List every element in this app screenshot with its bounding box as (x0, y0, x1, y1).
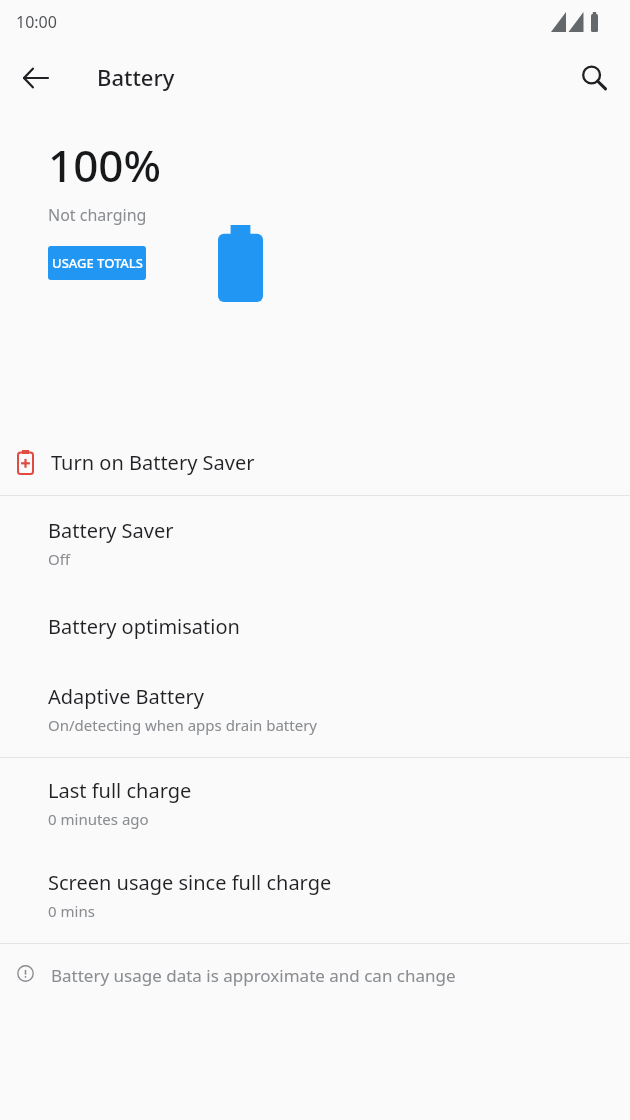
button[interactable]: Back (12, 54, 60, 102)
button[interactable]: Turn on Battery Saver (0, 432, 630, 495)
button[interactable]: Battery Saver (0, 496, 630, 591)
staticText: Screen usage since full charge (48, 869, 332, 896)
staticText: On/detecting when apps drain battery (48, 715, 317, 735)
staticText: USAGE TOTALS (52, 254, 143, 272)
button[interactable]: Last full charge (0, 758, 630, 851)
staticText: Turn on Battery Saver (51, 449, 255, 476)
staticText: 100% (48, 135, 161, 195)
staticText: Battery usage data is approximate and ca… (51, 964, 456, 987)
button[interactable]: Battery optimisation (0, 591, 630, 665)
button[interactable]: USAGE TOTALS (48, 246, 146, 280)
button[interactable]: Search (570, 54, 618, 102)
staticText: Battery optimisation (48, 613, 240, 640)
staticText: Last full charge (48, 777, 192, 804)
staticText: 10:00 (16, 11, 57, 33)
button[interactable]: Adaptive Battery (0, 665, 630, 757)
staticText: Not charging (48, 204, 147, 226)
staticText: Battery Saver (48, 517, 174, 544)
button[interactable]: Screen usage since full charge (0, 851, 630, 943)
staticText: Off (48, 549, 71, 569)
staticText: 0 mins (48, 901, 95, 921)
staticText: Battery (97, 62, 175, 92)
staticText: 0 minutes ago (48, 809, 149, 829)
staticText: Adaptive Battery (48, 683, 205, 710)
